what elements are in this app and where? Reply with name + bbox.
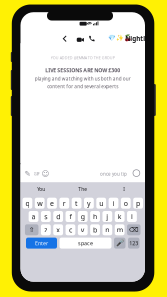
staticText: Enter: [35, 239, 48, 247]
button[interactable]: GIF: [33, 170, 40, 178]
staticText: 🎤: [116, 239, 124, 247]
button[interactable]: n: [102, 224, 112, 235]
staticText: ✎: [24, 169, 30, 178]
staticText: The: [78, 186, 87, 192]
staticText: ⇧: [29, 226, 35, 234]
button[interactable]: Video call: [75, 35, 83, 44]
staticText: r: [63, 198, 66, 208]
staticText: LIVE SESSIONS ARE NOW £300: [45, 67, 120, 74]
button[interactable]: ⌫: [127, 224, 140, 235]
button[interactable]: I: [103, 183, 145, 196]
staticText: d: [56, 212, 60, 221]
staticText: y: [87, 198, 91, 208]
button[interactable]: e: [47, 198, 57, 209]
button[interactable]: Back: [61, 34, 68, 43]
button[interactable]: Emoji: [42, 170, 49, 178]
staticText: playing and watching with us both and ou…: [35, 75, 131, 82]
staticText: w: [37, 198, 42, 208]
staticText: h: [93, 212, 97, 221]
staticText: Nightly Nexus: [125, 34, 167, 43]
staticText: j: [106, 212, 108, 221]
staticText: content for and several experts: [47, 83, 118, 90]
staticText: b: [93, 225, 97, 234]
button[interactable]: l: [127, 211, 137, 222]
staticText: v: [81, 225, 85, 234]
staticText: l: [131, 212, 133, 221]
button[interactable]: space: [59, 238, 111, 249]
button[interactable]: 123: [128, 238, 139, 249]
button[interactable]: f: [66, 211, 75, 222]
staticText: i: [112, 198, 114, 208]
button[interactable]: s: [41, 211, 51, 222]
staticText: You: [37, 186, 45, 192]
button[interactable]: The: [62, 183, 103, 196]
button[interactable]: k: [115, 211, 125, 222]
staticText: 💎✨🍒: [108, 34, 132, 41]
staticText: k: [118, 212, 122, 221]
button[interactable]: r: [59, 198, 69, 209]
button[interactable]: m: [115, 224, 125, 235]
button[interactable]: 🎤: [114, 238, 125, 249]
button[interactable]: Add: [133, 170, 140, 176]
button[interactable]: b: [90, 224, 100, 235]
staticText: space: [78, 239, 93, 247]
staticText: t: [75, 198, 78, 208]
staticText: c: [69, 225, 72, 234]
button[interactable]: i: [109, 198, 118, 209]
button[interactable]: h: [90, 211, 100, 222]
staticText: e: [50, 198, 54, 208]
button[interactable]: v: [78, 224, 88, 235]
button[interactable]: p: [133, 198, 143, 209]
staticText: z: [44, 225, 47, 234]
staticText: q: [25, 198, 29, 208]
staticText: o: [124, 198, 128, 208]
button[interactable]: w: [35, 198, 45, 209]
button[interactable]: g: [78, 211, 88, 222]
button[interactable]: u: [96, 198, 106, 209]
button[interactable]: o: [121, 198, 131, 209]
staticText: YOU ADDED @EMMA TO THE GROUP: [51, 55, 115, 60]
staticText: p: [136, 198, 140, 208]
staticText: g: [81, 212, 85, 221]
button[interactable]: z: [41, 224, 51, 235]
staticText: n: [105, 225, 109, 234]
button[interactable]: y: [84, 198, 94, 209]
button[interactable]: Enter: [26, 238, 57, 249]
staticText: f: [69, 212, 71, 221]
button[interactable]: d: [53, 211, 63, 222]
button[interactable]: q: [22, 198, 32, 209]
button[interactable]: c: [66, 224, 75, 235]
button[interactable]: x: [53, 224, 63, 235]
staticText: once you tip: [100, 171, 127, 177]
button[interactable]: j: [102, 211, 112, 222]
staticText: GIF: [34, 171, 40, 177]
staticText: ☺: [42, 169, 50, 178]
button[interactable]: Voice call: [88, 34, 95, 43]
button[interactable]: ⇧: [25, 224, 38, 235]
button[interactable]: You: [20, 183, 62, 196]
staticText: 123: [129, 239, 138, 247]
staticText: x: [56, 225, 60, 234]
staticText: s: [44, 212, 47, 221]
button[interactable]: Draw: [24, 170, 31, 178]
staticText: m: [117, 225, 123, 234]
staticText: ⌫: [129, 226, 139, 234]
staticText: u: [99, 198, 103, 208]
staticText: I: [123, 186, 125, 192]
staticText: a: [32, 212, 36, 221]
button[interactable]: a: [29, 211, 38, 222]
button[interactable]: t: [72, 198, 81, 209]
